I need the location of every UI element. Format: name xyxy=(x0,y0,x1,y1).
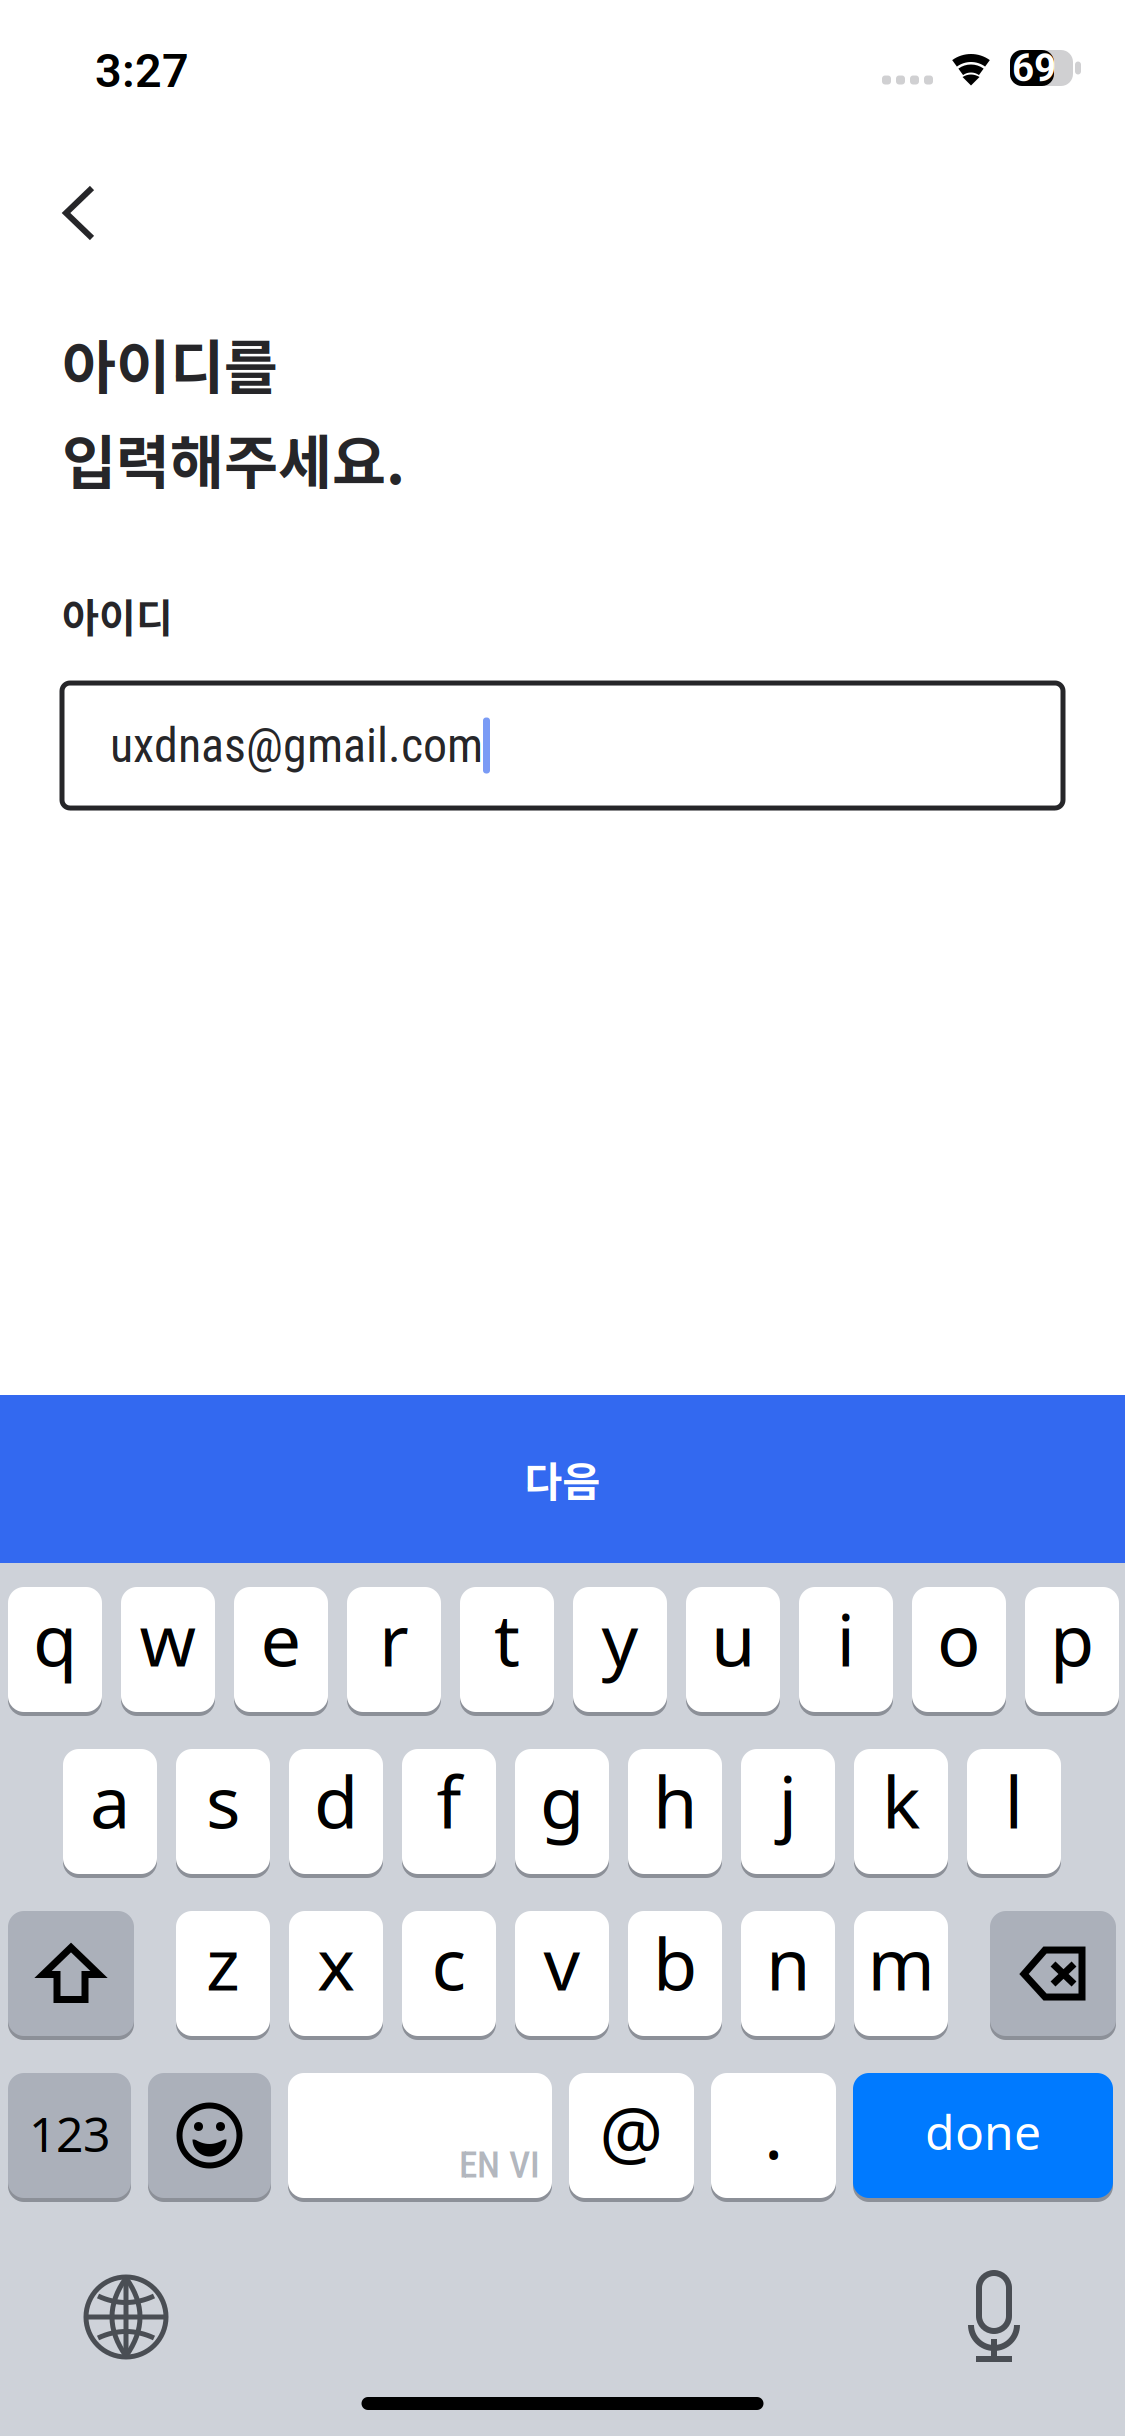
staticText: 다음 xyxy=(524,1449,600,1509)
button[interactable]: s xyxy=(176,1749,270,1874)
staticText: 3:27 xyxy=(95,44,189,98)
staticText: done xyxy=(925,2100,1041,2163)
staticText: m xyxy=(867,1915,934,2010)
button[interactable]: 다음 xyxy=(0,1395,1125,1563)
button[interactable]: Space xyxy=(288,2073,552,2198)
button[interactable]: c xyxy=(402,1911,496,2036)
staticText: t xyxy=(494,1591,520,1686)
staticText: k xyxy=(882,1753,920,1848)
staticText: y xyxy=(601,1591,638,1686)
button[interactable]: w xyxy=(121,1587,215,1712)
button[interactable]: r xyxy=(347,1587,441,1712)
staticText: g xyxy=(540,1753,584,1848)
button[interactable]: a xyxy=(63,1749,157,1874)
button[interactable]: x xyxy=(289,1911,383,2036)
button[interactable]: h xyxy=(628,1749,722,1874)
staticText: u xyxy=(711,1591,755,1686)
button[interactable]: 123 xyxy=(8,2073,131,2198)
button[interactable]: t xyxy=(460,1587,554,1712)
button[interactable]: y xyxy=(573,1587,667,1712)
staticText: z xyxy=(206,1915,240,2010)
staticText: 입력해주세요. xyxy=(62,416,405,501)
staticText: 123 xyxy=(29,2102,110,2165)
button[interactable]: e xyxy=(234,1587,328,1712)
button[interactable]: j xyxy=(741,1749,835,1874)
button[interactable]: Emoji xyxy=(148,2073,271,2198)
button[interactable]: b xyxy=(628,1911,722,2036)
staticText: w xyxy=(139,1591,196,1686)
staticText: i xyxy=(836,1591,855,1686)
staticText: r xyxy=(379,1591,409,1686)
button[interactable]: d xyxy=(289,1749,383,1874)
button[interactable]: z xyxy=(176,1911,270,2036)
button[interactable]: Dictation xyxy=(968,2273,1020,2361)
button[interactable]: p xyxy=(1025,1587,1119,1712)
button[interactable]: v xyxy=(515,1911,609,2036)
button[interactable]: u xyxy=(686,1587,780,1712)
button[interactable]: Next keyboard xyxy=(85,2276,167,2358)
staticText: . xyxy=(764,2084,783,2179)
button[interactable]: o xyxy=(912,1587,1006,1712)
button[interactable]: done xyxy=(853,2073,1113,2198)
button[interactable]: Back xyxy=(0,158,135,268)
button[interactable]: Delete xyxy=(990,1911,1116,2036)
button[interactable]: m xyxy=(854,1911,948,2036)
staticText: 아이디 xyxy=(62,586,173,644)
staticText: @ xyxy=(599,2085,663,2178)
button[interactable]: Shift xyxy=(8,1911,134,2036)
staticText: 아이디를 xyxy=(62,321,278,406)
staticText: v xyxy=(543,1915,580,2010)
button[interactable]: @ xyxy=(569,2073,694,2198)
staticText: h xyxy=(653,1753,697,1848)
staticText: 69 xyxy=(1012,45,1056,91)
staticText: q xyxy=(33,1591,77,1686)
staticText: n xyxy=(766,1915,810,2010)
staticText: b xyxy=(653,1915,697,2010)
button[interactable]: k xyxy=(854,1749,948,1874)
button[interactable]: n xyxy=(741,1911,835,2036)
button[interactable]: g xyxy=(515,1749,609,1874)
staticText: a xyxy=(90,1753,130,1848)
staticText: l xyxy=(1004,1753,1023,1848)
staticText: x xyxy=(317,1915,355,2010)
staticText: p xyxy=(1050,1591,1094,1686)
button[interactable]: f xyxy=(402,1749,496,1874)
staticText: o xyxy=(937,1591,981,1686)
staticText: s xyxy=(206,1753,240,1848)
button[interactable]: i xyxy=(799,1587,893,1712)
button[interactable]: . xyxy=(711,2073,836,2198)
staticText: d xyxy=(314,1753,358,1848)
staticText: f xyxy=(436,1753,461,1848)
button[interactable]: q xyxy=(8,1587,102,1712)
button[interactable]: l xyxy=(967,1749,1061,1874)
staticText: uxdnas@gmail.com xyxy=(110,717,483,774)
staticText: e xyxy=(260,1591,301,1686)
staticText: c xyxy=(431,1915,466,2010)
staticText: j xyxy=(778,1753,797,1848)
staticText: EN VI xyxy=(459,2143,540,2186)
